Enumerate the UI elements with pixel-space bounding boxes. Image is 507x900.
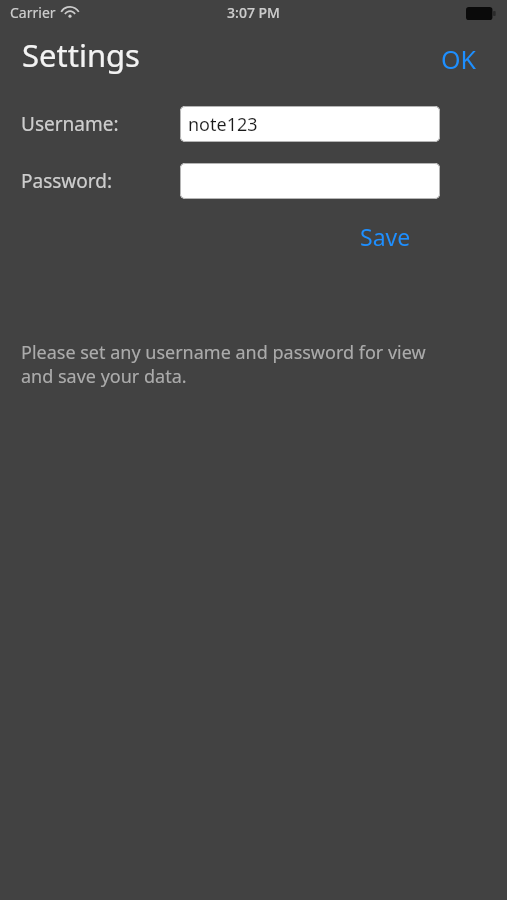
staticText: Carrier	[10, 3, 56, 22]
staticText: Username:	[21, 111, 119, 137]
staticText: OK	[441, 42, 477, 76]
staticText: Password:	[21, 168, 113, 194]
button[interactable]: Username input	[180, 106, 440, 142]
button[interactable]: Settings	[20, 34, 142, 76]
staticText: Please set any username and password for…	[21, 340, 441, 388]
staticText: Settings	[22, 34, 140, 76]
staticText: 3:07 PM	[227, 3, 280, 22]
staticText: note123	[188, 112, 258, 137]
staticText: Save	[360, 221, 411, 252]
button[interactable]: Save	[355, 219, 416, 254]
button[interactable]: Password input	[180, 163, 440, 199]
button[interactable]: OK	[436, 40, 482, 78]
